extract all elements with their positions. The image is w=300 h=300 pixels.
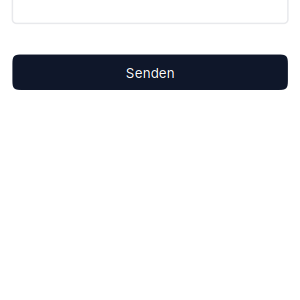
button[interactable]: Senden (12, 54, 288, 90)
staticText: Senden (126, 65, 175, 81)
